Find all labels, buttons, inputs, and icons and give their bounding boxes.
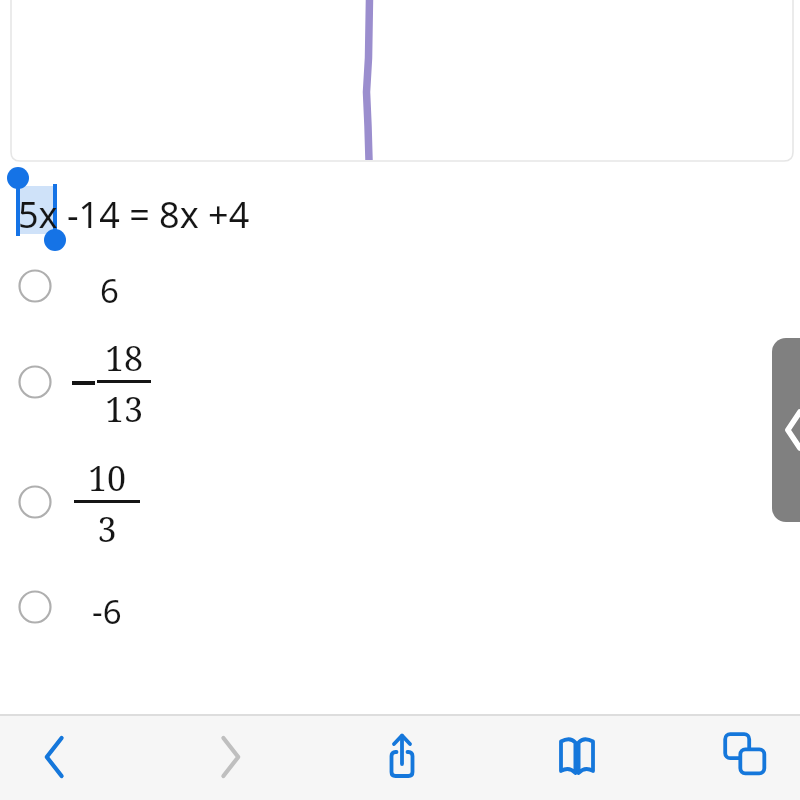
staticText: 6 [100, 268, 119, 313]
staticText: -6 [92, 589, 122, 634]
staticText: 3 [77, 506, 137, 548]
staticText: 13 [94, 386, 154, 428]
button[interactable] [0, 342, 800, 422]
button[interactable]: Forward [186, 718, 274, 796]
button[interactable]: Open panel [772, 338, 800, 522]
button[interactable] [0, 462, 800, 542]
staticText: 10 [77, 455, 137, 497]
button[interactable] [0, 567, 800, 647]
button[interactable]: Bookmarks [533, 718, 621, 796]
staticText: 18 [94, 335, 154, 377]
staticText: 5x -14 = 8x +4 [18, 190, 250, 239]
button[interactable]: Tabs [704, 718, 792, 796]
button[interactable] [0, 246, 800, 326]
button[interactable]: Back [11, 718, 99, 796]
button[interactable]: Share [358, 718, 446, 796]
